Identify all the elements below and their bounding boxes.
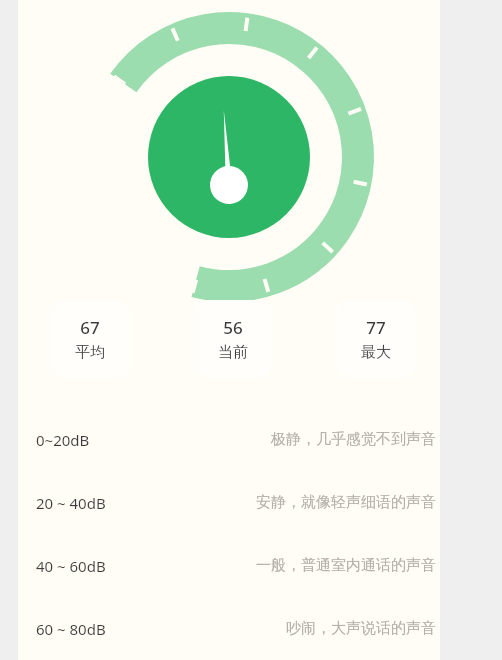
button[interactable]: 56: [193, 300, 273, 378]
button[interactable]: 60 ~ 80dB: [18, 597, 440, 660]
button[interactable]: 20 ~ 40dB: [18, 471, 440, 534]
staticText: 吵闹，大声说话的声音: [286, 619, 436, 638]
button[interactable]: 77: [336, 300, 416, 378]
staticText: 20 ~ 40dB: [36, 493, 106, 513]
staticText: 77: [366, 316, 386, 339]
button[interactable]: 0~20dB: [18, 408, 440, 471]
staticText: 67: [80, 316, 100, 339]
staticText: 56: [223, 316, 243, 339]
other: Noise level gauge: [79, 0, 379, 300]
staticText: 最大: [361, 343, 391, 362]
staticText: 平均: [75, 343, 105, 362]
staticText: 40 ~ 60dB: [36, 556, 106, 576]
staticText: 0~20dB: [36, 430, 90, 450]
staticText: 一般，普通室内通话的声音: [256, 556, 436, 575]
staticText: 当前: [218, 343, 248, 362]
staticText: 安静，就像轻声细语的声音: [256, 493, 436, 512]
staticText: 60 ~ 80dB: [36, 619, 106, 639]
staticText: 极静，几乎感觉不到声音: [271, 430, 436, 449]
button[interactable]: 67: [50, 300, 130, 378]
button[interactable]: 40 ~ 60dB: [18, 534, 440, 597]
